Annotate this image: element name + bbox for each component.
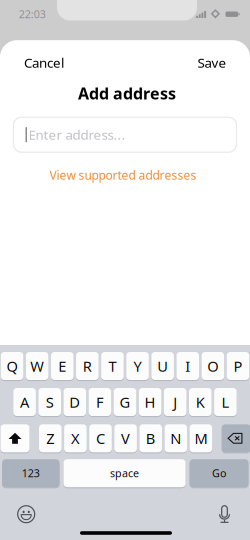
staticText: O bbox=[207, 356, 218, 376]
staticText: A bbox=[20, 392, 29, 412]
staticText: S bbox=[46, 392, 54, 412]
button[interactable]: I bbox=[176, 351, 199, 380]
staticText: E bbox=[58, 356, 66, 376]
button[interactable]: Q bbox=[1, 351, 23, 380]
button[interactable]: Cancel bbox=[17, 48, 71, 78]
button[interactable]: M bbox=[190, 424, 212, 453]
button[interactable]: Delete bbox=[222, 424, 250, 453]
button[interactable]: V bbox=[114, 424, 137, 453]
staticText: B bbox=[146, 429, 156, 448]
staticText: V bbox=[121, 429, 130, 448]
button[interactable]: Shift bbox=[0, 424, 29, 453]
staticText: 22:03 bbox=[19, 7, 46, 21]
staticText: M bbox=[194, 429, 207, 448]
button[interactable]: D bbox=[63, 387, 86, 416]
button[interactable]: Y bbox=[126, 351, 149, 380]
staticText: Go bbox=[212, 466, 226, 480]
staticText: C bbox=[96, 429, 105, 448]
staticText: View supported addresses bbox=[49, 167, 196, 183]
button[interactable]: K bbox=[189, 387, 212, 416]
staticText: I bbox=[185, 356, 190, 376]
staticText: X bbox=[71, 429, 80, 448]
staticText: W bbox=[30, 356, 44, 376]
button[interactable]: A bbox=[13, 387, 36, 416]
staticText: space bbox=[110, 466, 139, 480]
button[interactable]: Emoji keyboard bbox=[12, 500, 40, 528]
staticText: Q bbox=[7, 356, 18, 376]
button[interactable]: L bbox=[214, 387, 237, 416]
staticText: K bbox=[196, 392, 205, 412]
staticText: T bbox=[108, 356, 116, 376]
staticText: R bbox=[83, 356, 92, 376]
button[interactable]: E bbox=[51, 351, 74, 380]
staticText: Save bbox=[197, 54, 226, 71]
button[interactable]: H bbox=[139, 387, 161, 416]
staticText: U bbox=[157, 356, 168, 376]
button[interactable]: P bbox=[227, 351, 249, 380]
staticText: Y bbox=[134, 356, 142, 376]
button[interactable]: X bbox=[64, 424, 87, 453]
button[interactable]: W bbox=[26, 351, 48, 380]
button[interactable]: J bbox=[164, 387, 186, 416]
staticText: F bbox=[96, 392, 104, 412]
button[interactable]: 123 bbox=[2, 459, 59, 488]
staticText: D bbox=[69, 392, 80, 412]
button[interactable]: Go bbox=[190, 459, 249, 488]
staticText: Cancel bbox=[24, 54, 64, 71]
staticText: H bbox=[145, 392, 156, 412]
button[interactable]: N bbox=[164, 424, 187, 453]
button[interactable]: F bbox=[89, 387, 111, 416]
button[interactable]: S bbox=[38, 387, 61, 416]
staticText: Z bbox=[46, 429, 54, 448]
button[interactable]: U bbox=[151, 351, 174, 380]
button[interactable]: R bbox=[76, 351, 99, 380]
staticText: Enter address... bbox=[28, 126, 125, 143]
staticText: L bbox=[221, 392, 229, 412]
staticText: P bbox=[233, 356, 242, 376]
button[interactable]: T bbox=[101, 351, 124, 380]
button[interactable]: Z bbox=[39, 424, 62, 453]
button[interactable]: Save bbox=[190, 48, 234, 78]
button[interactable]: G bbox=[114, 387, 136, 416]
staticText: Add address bbox=[78, 83, 176, 104]
button[interactable]: B bbox=[139, 424, 162, 453]
staticText: 123 bbox=[22, 466, 40, 480]
button[interactable]: C bbox=[89, 424, 112, 453]
button[interactable]: View supported addresses bbox=[49, 165, 196, 185]
button[interactable]: space bbox=[63, 459, 185, 488]
staticText: J bbox=[173, 392, 177, 412]
button[interactable]: Dictation bbox=[210, 500, 238, 528]
staticText: N bbox=[170, 429, 181, 448]
button[interactable]: O bbox=[202, 351, 224, 380]
staticText: G bbox=[119, 392, 130, 412]
